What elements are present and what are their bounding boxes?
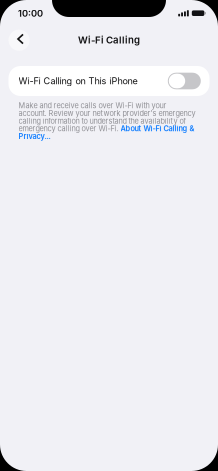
- staticText: About Wi-Fi Calling &: [120, 124, 194, 133]
- staticText: emergency calling over Wi-Fi.: [18, 124, 120, 133]
- button[interactable]: Back: [8, 29, 31, 52]
- button[interactable]: Wi-Fi Calling on This iPhone: [8, 66, 209, 96]
- staticText: Make and receive calls over Wi-Fi with y…: [18, 101, 166, 110]
- staticText: Wi-Fi Calling: [78, 34, 140, 46]
- button[interactable]: Privacy...: [18, 132, 50, 141]
- staticText: Privacy...: [18, 132, 50, 141]
- staticText: Wi-Fi Calling on This iPhone: [18, 75, 137, 86]
- button[interactable]: About Wi-Fi Calling &: [120, 124, 194, 133]
- staticText: 10:00: [18, 8, 43, 19]
- staticText: calling information to understand the av…: [18, 116, 186, 125]
- staticText: account. Review your network provider's …: [18, 109, 195, 118]
